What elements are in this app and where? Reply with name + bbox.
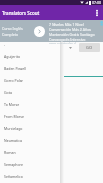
staticText: 7 Niveles Más 1 Nivel	[49, 22, 84, 27]
staticText: From Morse	[4, 114, 24, 119]
staticText: Mantención Gratis Santiago	[49, 32, 95, 37]
staticText: To Morse	[4, 102, 20, 107]
staticText: Completo	[2, 32, 19, 37]
staticText: www.cursoingles.cl	[49, 42, 76, 44]
staticText: Conversación Más 2 Años	[49, 27, 91, 32]
staticText: Aguijerito	[4, 54, 21, 59]
button[interactable]: Señamelico	[0, 170, 61, 182]
button[interactable]: Open language dropdown	[62, 43, 78, 52]
staticText: Gorro Polar	[4, 78, 24, 83]
button[interactable]: From Morse	[0, 110, 61, 122]
staticText: Translators Scout	[2, 10, 40, 16]
button[interactable]: Baden Powell	[0, 62, 61, 74]
button[interactable]: Gota	[0, 86, 61, 98]
button[interactable]: Aguijerito	[0, 50, 61, 62]
button[interactable]: -	[0, 38, 61, 50]
staticText: Señamelico	[4, 174, 23, 179]
button[interactable]: Murcielago	[0, 122, 61, 134]
button[interactable]: More options	[91, 5, 103, 20]
button[interactable]: Neumatica	[0, 134, 61, 146]
staticText: Baden Powell	[4, 66, 27, 71]
staticText: Murcielago	[4, 126, 23, 131]
button[interactable]: Curso Inglés	[0, 20, 103, 42]
button[interactable]: Roman	[0, 146, 61, 158]
staticText: 07:00	[92, 0, 101, 5]
staticText: Semaphore	[4, 162, 23, 167]
staticText: Roman	[4, 150, 16, 155]
staticText: -	[4, 42, 6, 47]
staticText: Curso Inglés	[2, 26, 23, 31]
button[interactable]: Semaphore	[0, 158, 61, 170]
button[interactable]: Open advertisement	[34, 26, 45, 37]
button[interactable]: Gorro Polar	[0, 74, 61, 86]
staticText: Gota	[4, 90, 12, 95]
other: Ad choices	[98, 21, 103, 26]
staticText: Conocopoés Intensivo	[49, 37, 86, 42]
button[interactable]: To Morse	[0, 98, 61, 110]
staticText: GO	[86, 45, 93, 50]
staticText: Neumatica	[4, 138, 22, 143]
button[interactable]: GO	[79, 43, 100, 52]
